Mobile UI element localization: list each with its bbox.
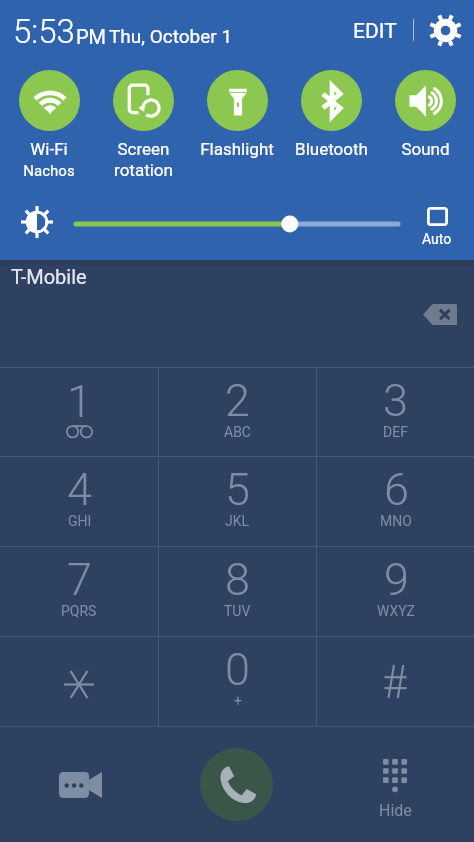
button[interactable]: 8 (159, 547, 316, 636)
button[interactable]: Settings (425, 10, 465, 50)
button[interactable]: Backspace (415, 293, 464, 336)
staticText: 4 (67, 463, 92, 516)
staticText: Nachos (23, 162, 75, 180)
button[interactable]: 7 (0, 547, 158, 636)
staticText: Wi-Fi (30, 139, 68, 159)
button[interactable]: 5 (159, 457, 316, 546)
staticText: DEF (383, 424, 408, 440)
staticText: PQRS (61, 603, 97, 619)
staticText: Screen rotation (114, 139, 173, 181)
staticText: Thu, October 1 (109, 25, 233, 47)
button[interactable]: Call (200, 748, 273, 821)
button[interactable]: Auto (411, 202, 463, 247)
button[interactable]: Bluetooth (284, 70, 378, 195)
button[interactable]: EDIT (343, 10, 407, 53)
staticText: TUV (224, 603, 251, 619)
staticText: 5 (225, 463, 250, 516)
staticText: MNO (380, 513, 412, 529)
staticText: Flashlight (200, 139, 274, 159)
staticText: T-Mobile (11, 265, 87, 288)
button[interactable]: Sound (378, 70, 472, 195)
staticText: 8 (225, 553, 250, 606)
staticText: 3 (383, 374, 408, 427)
button[interactable]: 4 (0, 457, 158, 546)
staticText: 9 (384, 553, 409, 606)
staticText: Hide (379, 801, 412, 820)
staticText: JKL (225, 513, 250, 529)
button[interactable]: Hide (362, 759, 428, 820)
button[interactable] (68, 209, 406, 239)
button[interactable]: Wi-Fi (2, 70, 96, 195)
staticText: 1 (67, 375, 92, 428)
button[interactable]: 2 (159, 368, 316, 456)
button[interactable]: Screen rotation (96, 70, 190, 195)
button[interactable]: 0 (159, 637, 316, 726)
staticText: 2 (225, 374, 250, 427)
button[interactable]: 6 (317, 457, 474, 546)
button[interactable]: Video call (50, 755, 110, 815)
staticText: 7 (67, 553, 92, 606)
staticText: ABC (224, 424, 251, 440)
button[interactable] (0, 637, 158, 726)
button[interactable]: Flashlight (190, 70, 284, 195)
staticText: 6 (384, 463, 409, 516)
button[interactable]: 9 (317, 547, 474, 636)
button[interactable] (317, 637, 474, 726)
button[interactable]: 3 (317, 368, 474, 456)
staticText: 0 (225, 643, 250, 696)
staticText: GHI (68, 513, 92, 529)
staticText: 5:53 (13, 12, 75, 51)
staticText: WXYZ (377, 603, 415, 619)
button[interactable]: 1 (0, 368, 158, 456)
staticText: EDIT (353, 19, 397, 44)
staticText: Bluetooth (295, 139, 368, 159)
staticText: + (234, 693, 242, 709)
button[interactable]: Brightness (17, 202, 57, 242)
staticText: Auto (422, 231, 452, 247)
staticText: PM (76, 25, 107, 48)
staticText: Sound (401, 139, 450, 159)
